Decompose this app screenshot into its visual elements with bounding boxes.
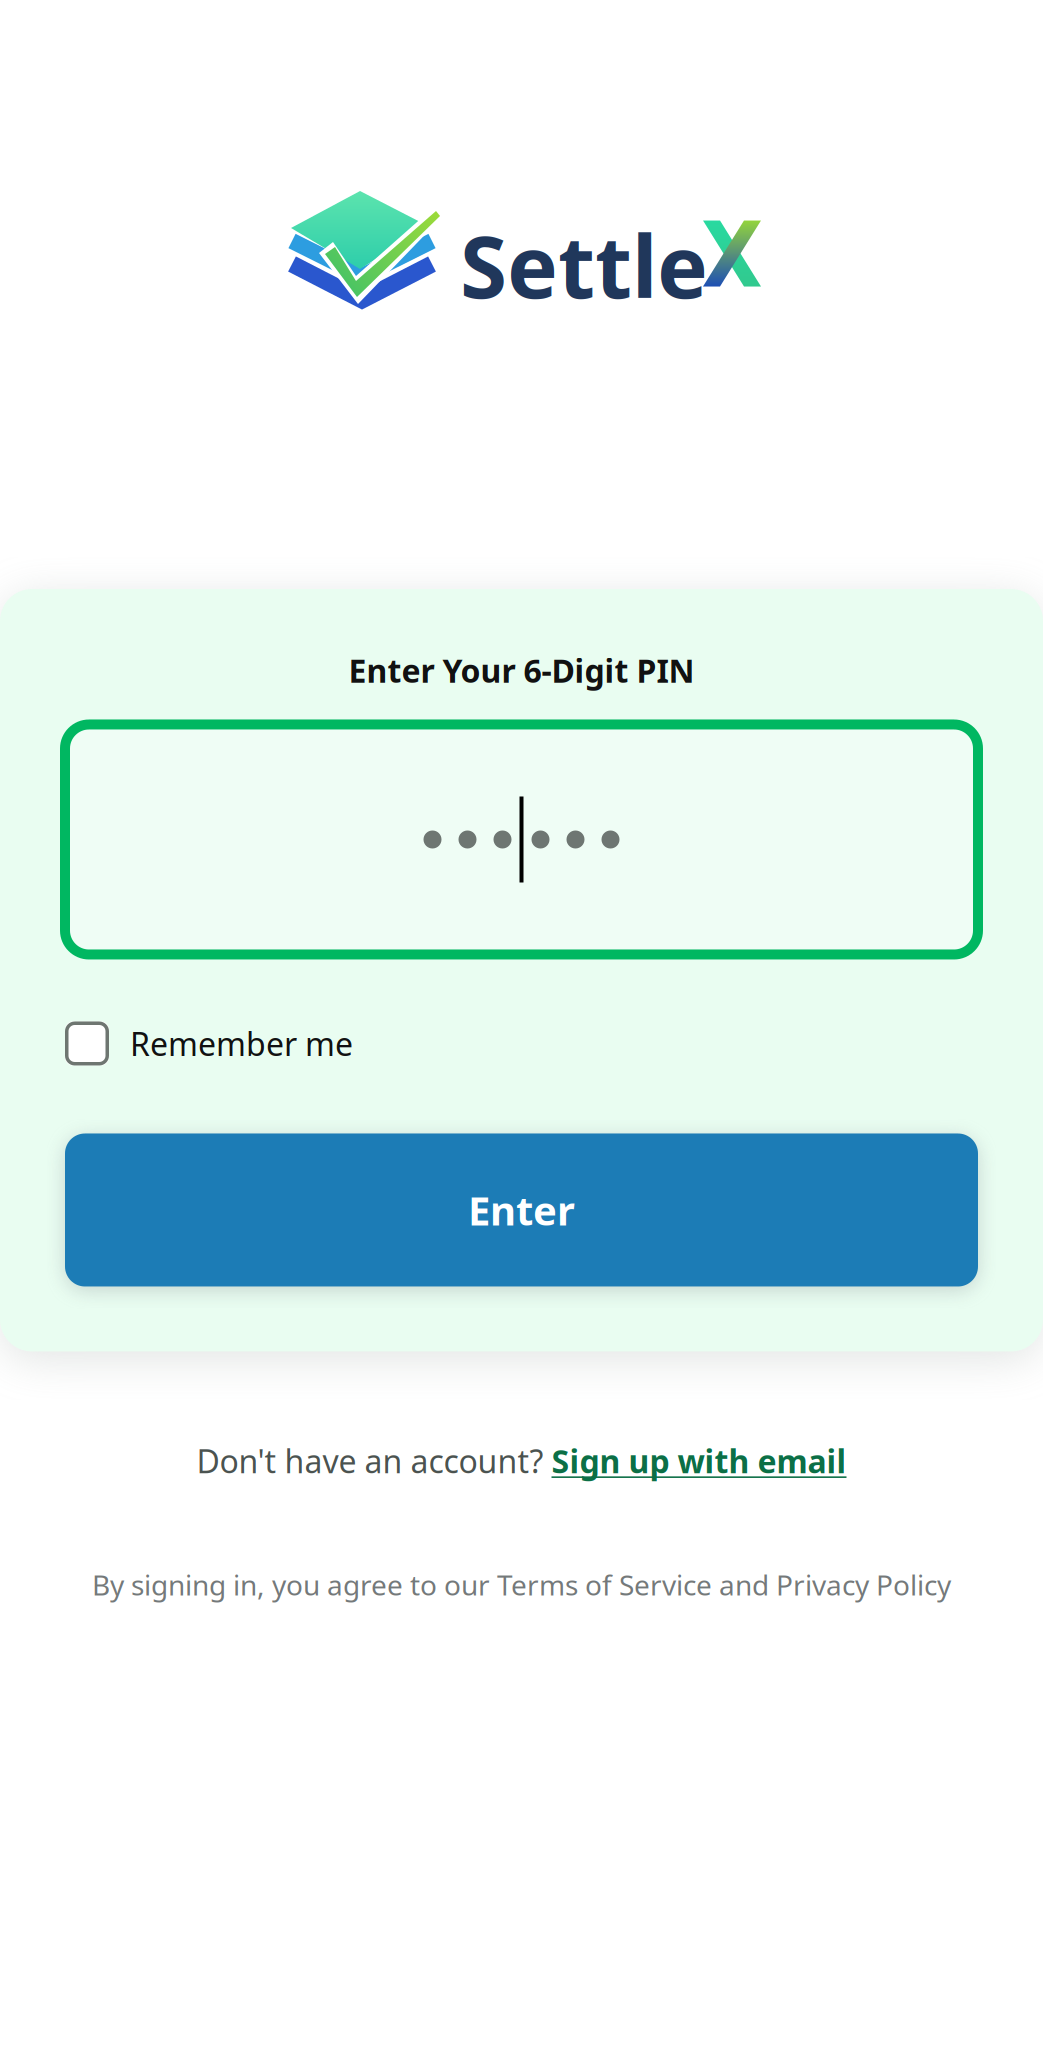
button[interactable]: Don't have an account?	[196, 1351, 846, 1482]
staticText: Sign up with email	[551, 1439, 846, 1482]
staticText: Remember me	[130, 1022, 353, 1065]
staticText: By signing in, you agree to our Terms of…	[92, 1566, 951, 1603]
button[interactable]: Enter	[0, 1065, 1043, 1286]
button[interactable]: Remember me	[0, 954, 1043, 1065]
staticText: Enter Your 6-Digit PIN	[348, 649, 694, 691]
staticText: Enter	[468, 1183, 575, 1236]
staticText: Settle	[460, 208, 708, 322]
staticText: Don't have an account?	[196, 1439, 551, 1482]
